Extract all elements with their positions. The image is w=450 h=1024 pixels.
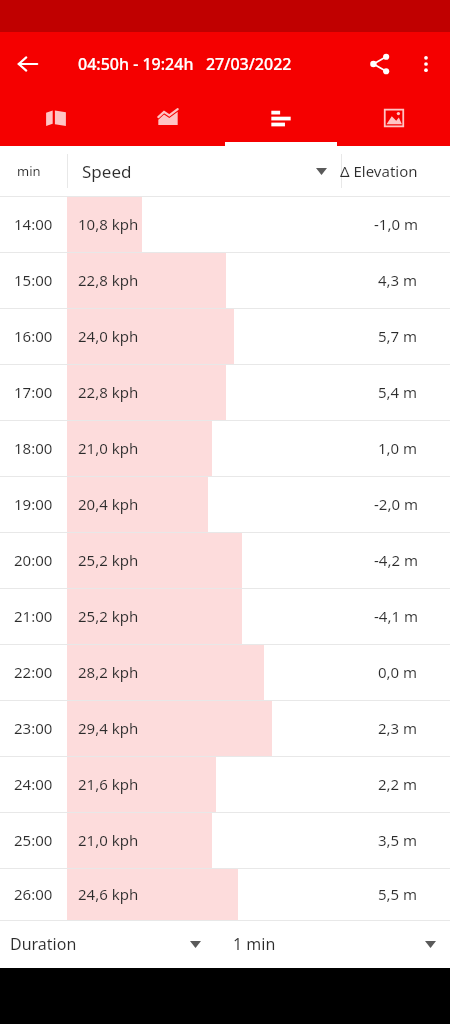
staticText: 14:00 [14, 214, 53, 234]
staticText: -1,0 m [374, 214, 418, 234]
staticText: 4,3 m [378, 270, 418, 290]
staticText: 28,2 kph [78, 662, 139, 682]
staticText: 21,0 kph [78, 438, 139, 458]
staticText: 29,4 kph [78, 718, 139, 738]
button[interactable]: Duration [0, 920, 225, 968]
staticText: 5,7 m [378, 326, 418, 346]
button[interactable]: Table [224, 96, 337, 146]
staticText: 5,5 m [378, 884, 418, 904]
staticText: 1 min [233, 933, 276, 955]
button[interactable]: Back [12, 48, 44, 80]
staticText: 25,2 kph [78, 550, 139, 570]
button[interactable]: 21:00 [0, 588, 450, 644]
button[interactable]: 15:00 [0, 252, 450, 308]
staticText: 25:00 [14, 830, 53, 850]
staticText: 20,4 kph [78, 494, 139, 514]
button[interactable]: 17:00 [0, 364, 450, 420]
staticText: 16:00 [14, 326, 53, 346]
staticText: 17:00 [14, 382, 53, 402]
staticText: 1,0 m [378, 438, 418, 458]
staticText: -4,2 m [374, 550, 418, 570]
staticText: 23:00 [14, 718, 53, 738]
staticText: 15:00 [14, 270, 53, 290]
staticText: 24,0 kph [78, 326, 139, 346]
button[interactable]: 26:00 [0, 868, 450, 920]
staticText: 5,4 m [378, 382, 418, 402]
staticText: 2,3 m [378, 718, 418, 738]
staticText: 0,0 m [378, 662, 418, 682]
button[interactable]: Map [0, 96, 112, 146]
staticText: 22,8 kph [78, 270, 139, 290]
button[interactable]: 16:00 [0, 308, 450, 364]
staticText: 24:00 [14, 774, 53, 794]
staticText: 3,5 m [378, 830, 418, 850]
staticText: min [17, 162, 41, 180]
staticText: 10,8 kph [78, 214, 139, 234]
button[interactable]: 19:00 [0, 476, 450, 532]
staticText: -4,1 m [374, 606, 418, 626]
button[interactable]: Photos [337, 96, 450, 146]
button[interactable]: 14:00 [0, 196, 450, 252]
button[interactable]: 24:00 [0, 756, 450, 812]
button[interactable]: 25:00 [0, 812, 450, 868]
button[interactable]: 1 min [225, 920, 450, 968]
staticText: 21,0 kph [78, 830, 139, 850]
button[interactable]: Chart [112, 96, 224, 146]
staticText: 18:00 [14, 438, 53, 458]
button[interactable]: 18:00 [0, 420, 450, 476]
staticText: 26:00 [14, 884, 53, 904]
button[interactable]: More options [410, 48, 442, 80]
staticText: 20:00 [14, 550, 53, 570]
button[interactable]: 22:00 [0, 644, 450, 700]
staticText: 04:50h - 19:24h 27/03/2022 [78, 53, 292, 75]
staticText: 21,6 kph [78, 774, 139, 794]
staticText: 25,2 kph [78, 606, 139, 626]
staticText: Speed [82, 160, 132, 183]
staticText: -2,0 m [374, 494, 418, 514]
staticText: Δ Elevation [340, 161, 418, 181]
staticText: 19:00 [14, 494, 53, 514]
staticText: 21:00 [14, 606, 53, 626]
staticText: 22:00 [14, 662, 53, 682]
staticText: 2,2 m [378, 774, 418, 794]
button[interactable]: 20:00 [0, 532, 450, 588]
staticText: 22,8 kph [78, 382, 139, 402]
button[interactable]: Speed [68, 146, 341, 196]
staticText: 24,6 kph [78, 884, 139, 904]
staticText: Duration [10, 933, 77, 955]
button[interactable]: Share [364, 48, 396, 80]
button[interactable]: 23:00 [0, 700, 450, 756]
